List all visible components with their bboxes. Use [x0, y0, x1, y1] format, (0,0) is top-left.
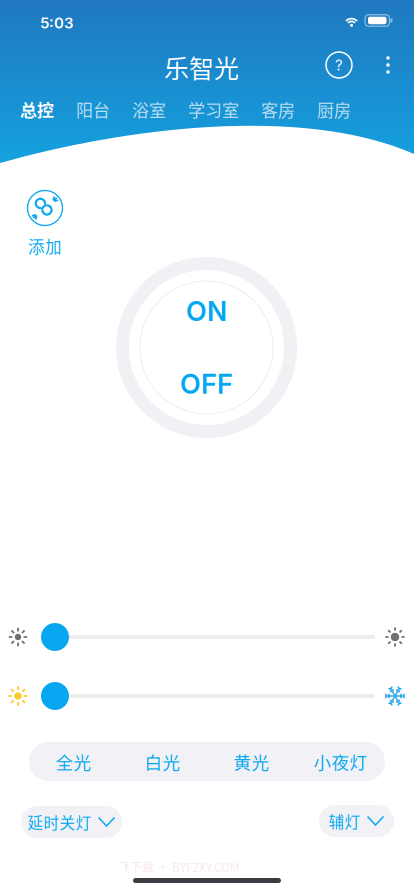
staticText: 延时关灯: [27, 811, 91, 833]
staticText: 白光: [144, 749, 180, 774]
staticText: 阳台: [76, 97, 110, 122]
staticText: 总控: [20, 97, 54, 122]
button[interactable]: 全光: [29, 742, 118, 781]
button[interactable]: 总控: [20, 97, 54, 122]
button[interactable]: 辅灯: [319, 805, 394, 837]
button[interactable]: 阳台: [76, 97, 110, 122]
button[interactable]: 白光: [118, 742, 207, 781]
button[interactable]: 学习室: [188, 97, 239, 122]
button[interactable]: 客房: [261, 97, 295, 122]
staticText: 客房: [261, 97, 295, 122]
button[interactable]: Help: [325, 51, 353, 79]
staticText: 辅灯: [328, 810, 360, 832]
staticText: OFF: [180, 367, 233, 400]
staticText: 乐智光: [164, 49, 239, 85]
staticText: 浴室: [132, 97, 166, 122]
staticText: 全光: [55, 749, 91, 774]
staticText: 厨房: [317, 97, 351, 122]
button[interactable]: 小夜灯: [296, 742, 385, 781]
button[interactable]: More options: [378, 54, 398, 76]
staticText: 黄光: [233, 749, 269, 774]
staticText: 5:03: [40, 14, 74, 32]
staticText: 添加: [28, 234, 62, 258]
button[interactable]: 浴室: [132, 97, 166, 122]
button[interactable]: 添加: [27, 190, 63, 258]
staticText: ?: [335, 56, 343, 74]
button[interactable]: 延时关灯: [21, 806, 122, 838]
staticText: ON: [186, 295, 227, 327]
button[interactable]: 厨房: [317, 97, 351, 122]
staticText: 飞下载 · BYFZXY.COM: [118, 858, 240, 875]
button[interactable]: 黄光: [207, 742, 296, 781]
staticText: 小夜灯: [313, 749, 367, 774]
staticText: 学习室: [188, 97, 239, 122]
